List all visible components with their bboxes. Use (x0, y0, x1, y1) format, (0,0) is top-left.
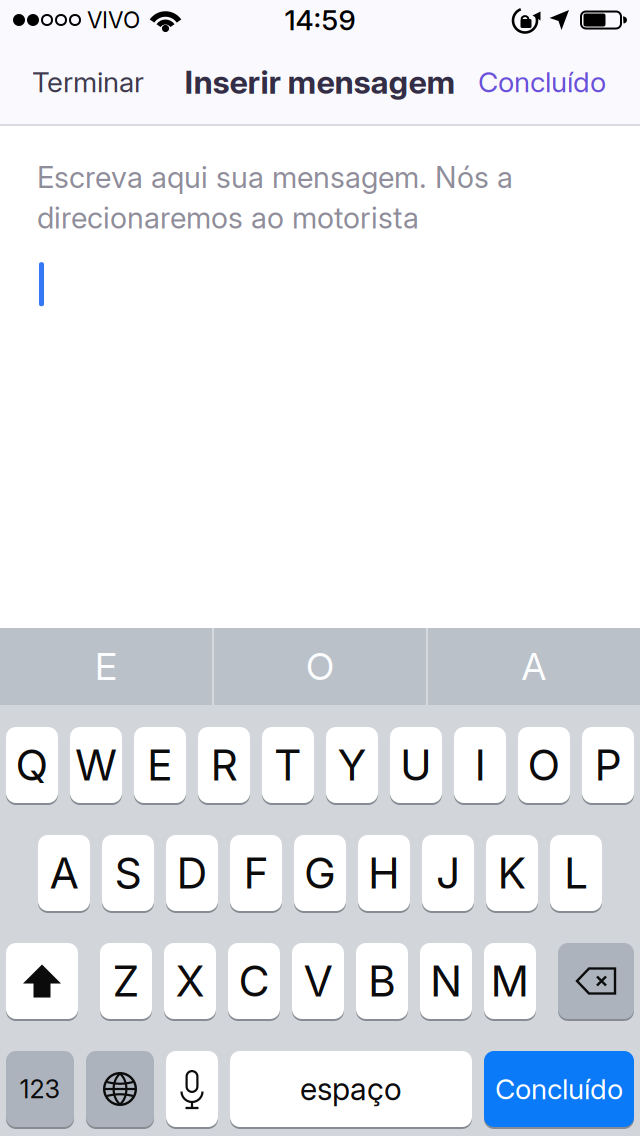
button[interactable]: P (582, 727, 634, 803)
staticText: V (303, 956, 332, 1006)
button[interactable]: A (38, 835, 90, 911)
button[interactable]: C (228, 943, 280, 1019)
staticText: L (564, 848, 588, 898)
button[interactable]: O (518, 727, 570, 803)
staticText: P (594, 740, 621, 790)
staticText: E (147, 740, 173, 790)
staticText: J (436, 848, 460, 898)
staticText: D (176, 848, 207, 898)
staticText: Q (15, 740, 48, 790)
button[interactable]: E (0, 628, 212, 705)
button[interactable]: U (390, 727, 442, 803)
staticText: N (430, 956, 462, 1006)
staticText: T (274, 740, 302, 790)
staticText: S (114, 848, 141, 898)
button[interactable] (6, 943, 78, 1019)
button[interactable]: D (166, 835, 218, 911)
button[interactable]: A (428, 628, 640, 705)
staticText: K (497, 848, 526, 898)
staticText: A (49, 848, 78, 898)
staticText: M (490, 956, 529, 1006)
staticText: direcionaremos ao motorista (37, 201, 419, 235)
button[interactable]: J (422, 835, 474, 911)
staticText: espaço (300, 1071, 402, 1107)
staticText: W (75, 740, 117, 790)
staticText: 14:59 (284, 3, 355, 36)
button[interactable]: H (358, 835, 410, 911)
staticText: H (368, 848, 400, 898)
button[interactable]: K (486, 835, 538, 911)
button[interactable]: G (294, 835, 346, 911)
staticText: E (95, 644, 117, 688)
button[interactable]: L (550, 835, 602, 911)
staticText: U (400, 740, 432, 790)
button[interactable]: S (102, 835, 154, 911)
button[interactable]: Concluído (484, 1051, 634, 1127)
button[interactable]: V (292, 943, 344, 1019)
button[interactable]: X (164, 943, 216, 1019)
button[interactable]: Terminar (0, 65, 144, 98)
staticText: C (238, 956, 269, 1006)
button[interactable]: I (454, 727, 506, 803)
staticText: R (210, 740, 237, 790)
button[interactable]: Z (100, 943, 152, 1019)
button[interactable] (558, 943, 634, 1019)
button[interactable]: O (214, 628, 426, 705)
staticText: Concluído (495, 1072, 623, 1105)
staticText: Terminar (32, 65, 144, 98)
staticText: A (521, 644, 546, 688)
button[interactable]: W (70, 727, 122, 803)
button[interactable]: T (262, 727, 314, 803)
staticText: 123 (19, 1074, 60, 1104)
staticText: O (527, 740, 560, 790)
button[interactable]: espaço (230, 1051, 472, 1127)
staticText: B (368, 956, 396, 1006)
staticText: Z (112, 956, 139, 1006)
staticText: F (243, 848, 268, 898)
staticText: X (175, 956, 204, 1006)
button[interactable]: 123 (6, 1051, 74, 1127)
staticText: I (474, 740, 485, 790)
button[interactable]: F (230, 835, 282, 911)
button[interactable]: Y (326, 727, 378, 803)
button[interactable] (166, 1051, 218, 1127)
button[interactable]: Concluído (478, 65, 640, 98)
button[interactable]: M (484, 943, 536, 1019)
staticText: Concluído (478, 65, 606, 98)
staticText: VIVO (87, 7, 140, 33)
button[interactable]: B (356, 943, 408, 1019)
button[interactable]: Q (6, 727, 58, 803)
button[interactable]: E (134, 727, 186, 803)
button[interactable]: N (420, 943, 472, 1019)
staticText: Y (337, 740, 366, 790)
staticText: O (306, 644, 334, 688)
button[interactable] (86, 1051, 154, 1127)
staticText: G (304, 848, 336, 898)
button[interactable]: R (198, 727, 250, 803)
staticText: Escreva aqui sua mensagem. Nós a (37, 160, 513, 195)
staticText: Inserir mensagem (184, 63, 455, 101)
